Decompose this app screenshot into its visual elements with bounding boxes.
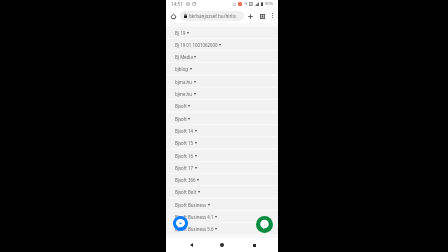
button[interactable]: Recent apps	[247, 238, 261, 252]
staticText: Bjsoft Bolt	[175, 189, 197, 195]
staticText: Bj 19	[175, 30, 186, 36]
staticText: Bjsoft Business 4.1	[175, 214, 214, 220]
staticText: Bj Media	[175, 54, 193, 60]
button[interactable]: Bjsoft Bolt	[166, 186, 278, 197]
staticText: Bjsoft 17	[175, 165, 194, 171]
button[interactable]: Home	[215, 238, 229, 252]
button[interactable]: Home	[167, 10, 179, 22]
button[interactable]: Bj 19 01 1001062000	[166, 39, 278, 50]
staticText: Bjsoft Business 5.6	[175, 226, 214, 232]
staticText: Bjsoft 14	[175, 128, 194, 134]
button[interactable]: Bj 19	[166, 27, 278, 38]
button[interactable]: Switch tabs	[256, 10, 268, 22]
button[interactable]: Bjsoft 15	[166, 137, 278, 148]
button[interactable]: Bjsoft	[166, 113, 278, 124]
staticText: Bj 19 01 1001062000	[175, 42, 218, 48]
button[interactable]: New tab	[244, 10, 256, 22]
staticText: Bjsoft 366	[175, 177, 196, 183]
staticText: bjma.hu	[175, 79, 193, 85]
staticText: bjme.hu	[175, 91, 193, 97]
button[interactable]: Bj Media	[166, 51, 278, 62]
button[interactable]: Bjsoft 14	[166, 125, 278, 136]
button[interactable]: Bjsoft Business 4.1	[166, 211, 278, 222]
button[interactable]: Bjsoft	[166, 100, 278, 111]
staticText: Bjsoft	[175, 103, 187, 109]
staticText: 14:51	[171, 1, 183, 7]
button[interactable]: More options	[268, 11, 277, 20]
staticText: Bjsoft Business	[175, 202, 207, 208]
button[interactable]: Bjsoft Business	[166, 199, 278, 210]
staticText: Bjsoft 16	[175, 153, 194, 159]
staticText: Bjsoft	[175, 116, 187, 122]
button[interactable]: Bjsoft 366	[166, 174, 278, 185]
button[interactable]: Bjsoft 16	[166, 150, 278, 161]
button[interactable]: bjme.hu	[166, 88, 278, 99]
button[interactable]: WhatsApp chat bubble	[256, 216, 273, 233]
staticText: 90%	[265, 1, 274, 7]
staticText: bkrbanjozsef.hu/hirlis	[189, 13, 236, 19]
staticText: Bjsoft 15	[175, 140, 194, 146]
button[interactable]: Messenger chat bubble	[173, 216, 188, 231]
button[interactable]: bjma.hu	[166, 76, 278, 87]
button[interactable]: bkrbanjozsef.hu/hirlis	[180, 11, 244, 21]
button[interactable]: Bjsoft Business 5.6	[166, 223, 278, 234]
button[interactable]: Back	[184, 238, 198, 252]
button[interactable]: bjblog	[166, 63, 278, 74]
staticText: bjblog	[175, 66, 189, 72]
button[interactable]: Bjsoft 17	[166, 162, 278, 173]
